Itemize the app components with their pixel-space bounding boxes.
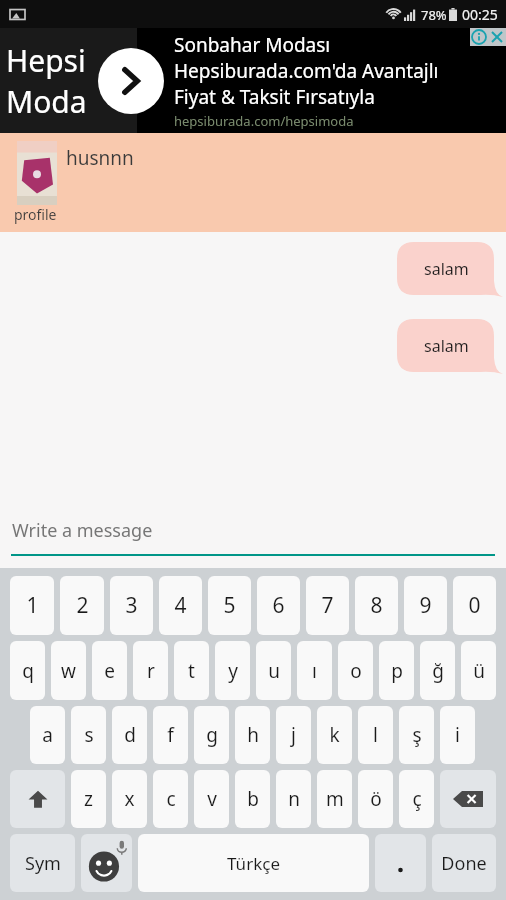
- button[interactable]: ö: [358, 770, 393, 828]
- staticText: w: [61, 658, 76, 684]
- button[interactable]: z: [71, 770, 106, 828]
- staticText: profile: [14, 205, 57, 224]
- button[interactable]: p: [379, 641, 414, 700]
- staticText: ı: [312, 658, 317, 684]
- button[interactable]: a: [30, 706, 65, 764]
- button[interactable]: ç: [399, 770, 434, 828]
- button[interactable]: Backspace: [440, 770, 496, 828]
- staticText: o: [350, 658, 362, 684]
- staticText: 6: [272, 591, 285, 620]
- staticText: husnnn: [66, 145, 134, 171]
- button[interactable]: Hepsi: [0, 28, 506, 133]
- staticText: Moda: [6, 81, 87, 122]
- staticText: m: [326, 786, 344, 812]
- button[interactable]: t: [174, 641, 209, 700]
- button[interactable]: 0: [453, 576, 496, 635]
- staticText: g: [206, 722, 218, 748]
- button[interactable]: Close ad: [488, 28, 506, 46]
- button[interactable]: 2: [60, 576, 104, 635]
- button[interactable]: Done: [432, 834, 496, 892]
- button[interactable]: 3: [110, 576, 153, 635]
- button[interactable]: i: [440, 706, 475, 764]
- button[interactable]: Shift: [10, 770, 65, 828]
- button[interactable]: 8: [355, 576, 398, 635]
- button[interactable]: m: [317, 770, 352, 828]
- staticText: 5: [223, 591, 236, 620]
- button[interactable]: c: [153, 770, 188, 828]
- button[interactable]: r: [133, 641, 168, 700]
- staticText: y: [228, 658, 238, 684]
- button[interactable]: ş: [399, 706, 434, 764]
- staticText: c: [166, 786, 176, 812]
- button[interactable]: y: [215, 641, 250, 700]
- staticText: Write a message: [12, 518, 153, 543]
- button[interactable]: ı: [297, 641, 332, 700]
- staticText: 2: [76, 591, 89, 620]
- button[interactable]: w: [51, 641, 86, 700]
- button[interactable]: 7: [306, 576, 349, 635]
- staticText: hepsiburada.com/hepsimoda: [174, 112, 354, 130]
- button[interactable]: g: [194, 706, 229, 764]
- button[interactable]: o: [338, 641, 373, 700]
- staticText: 8: [370, 591, 383, 620]
- staticText: x: [124, 786, 135, 812]
- staticText: u: [268, 658, 280, 684]
- staticText: 3: [125, 591, 138, 620]
- staticText: 9: [419, 591, 432, 620]
- staticText: a: [42, 722, 53, 748]
- staticText: 7: [321, 591, 334, 620]
- button[interactable]: salam: [397, 242, 500, 295]
- button[interactable]: h: [235, 706, 270, 764]
- staticText: ç: [412, 786, 422, 812]
- button[interactable]: 9: [404, 576, 447, 635]
- staticText: salam: [424, 258, 469, 280]
- button[interactable]: Write a message: [0, 500, 506, 568]
- button[interactable]: f: [153, 706, 188, 764]
- staticText: b: [247, 786, 259, 812]
- button[interactable]: s: [71, 706, 106, 764]
- button[interactable]: Ad information: [470, 28, 488, 46]
- button[interactable]: Sym: [10, 834, 75, 892]
- button[interactable]: j: [276, 706, 311, 764]
- button[interactable]: salam: [397, 319, 500, 372]
- button[interactable]: ü: [461, 641, 496, 700]
- button[interactable]: e: [92, 641, 127, 700]
- staticText: 00:25: [462, 5, 498, 24]
- staticText: ü: [473, 658, 485, 684]
- staticText: r: [147, 658, 155, 684]
- staticText: l: [373, 722, 378, 748]
- staticText: ş: [412, 722, 422, 748]
- button[interactable]: Emoji and voice input: [81, 834, 132, 892]
- staticText: v: [207, 786, 217, 812]
- button[interactable]: u: [256, 641, 291, 700]
- button[interactable]: 4: [159, 576, 202, 635]
- staticText: 1: [26, 591, 39, 620]
- button[interactable]: ğ: [420, 641, 455, 700]
- staticText: 78%: [421, 6, 447, 24]
- staticText: Türkçe: [227, 852, 280, 875]
- button[interactable]: q: [10, 641, 45, 700]
- staticText: Done: [441, 851, 487, 876]
- staticText: salam: [424, 335, 469, 357]
- button[interactable]: 6: [257, 576, 300, 635]
- staticText: j: [291, 722, 296, 748]
- button[interactable]: 5: [208, 576, 251, 635]
- button[interactable]: n: [276, 770, 311, 828]
- button[interactable]: husnnn: [0, 133, 506, 232]
- staticText: n: [288, 786, 300, 812]
- staticText: 0: [468, 591, 481, 620]
- button[interactable]: Türkçe: [138, 834, 369, 892]
- button[interactable]: 1: [10, 576, 54, 635]
- staticText: e: [104, 658, 115, 684]
- staticText: ö: [370, 786, 382, 812]
- staticText: f: [167, 722, 174, 748]
- button[interactable]: Period: [375, 834, 426, 892]
- staticText: ğ: [432, 658, 444, 684]
- button[interactable]: d: [112, 706, 147, 764]
- button[interactable]: x: [112, 770, 147, 828]
- button[interactable]: k: [317, 706, 352, 764]
- button[interactable]: l: [358, 706, 393, 764]
- button[interactable]: v: [194, 770, 229, 828]
- button[interactable]: b: [235, 770, 270, 828]
- staticText: z: [84, 786, 93, 812]
